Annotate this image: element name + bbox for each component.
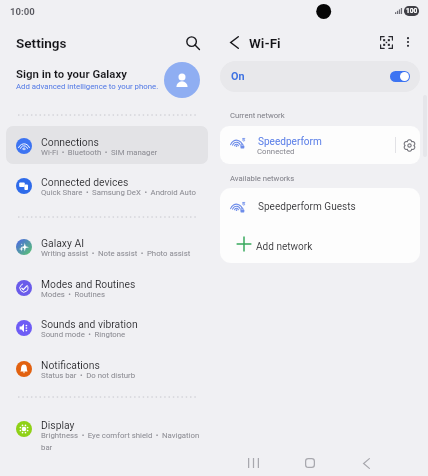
staticText: Add advanced intelligence to your phone. xyxy=(16,82,159,91)
button[interactable]: Search xyxy=(180,30,206,56)
staticText: Wi-Fi • Bluetooth • SIM manager xyxy=(41,148,202,157)
staticText: 10:00 xyxy=(10,6,35,17)
button[interactable]: Galaxy AI xyxy=(6,227,208,265)
button[interactable]: Recent apps xyxy=(235,448,271,476)
button[interactable]: Modes and Routines xyxy=(6,268,208,306)
staticText: 100 xyxy=(406,7,418,15)
button[interactable]: Connections xyxy=(6,126,208,164)
staticText: Writing assist • Note assist • Photo ass… xyxy=(41,249,202,258)
staticText: Connected xyxy=(257,147,295,156)
staticText: Available networks xyxy=(230,174,295,183)
button[interactable]: On xyxy=(220,61,420,92)
button[interactable]: Sign in to your Galaxy xyxy=(0,57,214,103)
staticText: Notifications xyxy=(41,359,100,371)
button[interactable]: Speedperform xyxy=(220,126,420,164)
staticText: Connections xyxy=(41,136,99,148)
button[interactable]: Back xyxy=(348,448,384,476)
button[interactable]: More options xyxy=(396,30,420,54)
staticText: Display xyxy=(41,419,75,431)
staticText: Speedperform Guests xyxy=(258,201,356,213)
staticText: Sound mode • Ringtone xyxy=(41,330,202,339)
button[interactable]: Add network xyxy=(220,226,420,263)
button[interactable]: Scan QR code xyxy=(374,30,398,54)
staticText: Brightness • Eye comfort shield • Naviga… xyxy=(41,431,202,452)
staticText: Wi-Fi xyxy=(249,35,281,51)
staticText: Galaxy AI xyxy=(41,237,84,249)
staticText: Settings xyxy=(16,35,67,51)
staticText: Sounds and vibration xyxy=(41,318,138,330)
button[interactable]: Home xyxy=(292,448,328,476)
staticText: Current network xyxy=(230,111,285,120)
staticText: Sign in to your Galaxy xyxy=(16,67,127,80)
staticText: Connected devices xyxy=(41,176,129,188)
staticText: Quick Share • Samsung DeX • Android Auto xyxy=(41,188,202,197)
staticText: Status bar • Do not disturb xyxy=(41,371,202,380)
staticText: Modes • Routines xyxy=(41,290,202,299)
button[interactable]: Notifications xyxy=(6,349,208,387)
staticText: Add network xyxy=(256,241,313,253)
button[interactable]: Sounds and vibration xyxy=(6,308,208,346)
button[interactable]: Display xyxy=(6,409,208,447)
button[interactable]: Connected devices xyxy=(6,166,208,204)
staticText: On xyxy=(231,70,245,83)
button[interactable]: Back xyxy=(223,31,245,53)
button[interactable]: Speedperform Guests xyxy=(220,188,420,226)
staticText: Speedperform xyxy=(258,136,322,148)
staticText: Modes and Routines xyxy=(41,278,136,290)
button[interactable]: Network settings xyxy=(399,135,419,155)
